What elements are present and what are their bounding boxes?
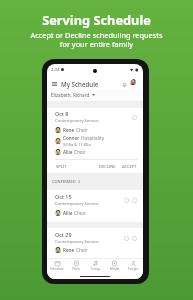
button[interactable]: Rene xyxy=(55,124,138,135)
staticText: Choir xyxy=(74,210,86,216)
button[interactable]: Profile xyxy=(130,79,140,89)
staticText: Connor xyxy=(63,135,80,141)
staticText: 2:34 xyxy=(51,67,60,73)
button[interactable]: Allie xyxy=(55,146,138,157)
staticText: DECLINE xyxy=(99,164,116,169)
button[interactable]: Info xyxy=(122,196,130,204)
button[interactable]: Menu xyxy=(50,79,59,88)
button[interactable]: Schedule xyxy=(47,259,67,273)
staticText: Hospitality xyxy=(81,135,105,141)
staticText: Allie xyxy=(63,149,73,155)
staticText: SPLIT xyxy=(56,164,67,169)
button[interactable]: Options xyxy=(130,196,138,204)
staticText: Choir xyxy=(76,127,88,133)
staticText: Contemporary Service xyxy=(55,118,99,124)
staticText: Serving Schedule xyxy=(42,11,151,28)
staticText: Choir xyxy=(76,247,88,253)
button[interactable]: Options xyxy=(130,234,138,242)
button[interactable]: People xyxy=(124,259,143,273)
staticText: Rene xyxy=(63,247,75,253)
staticText: Allie xyxy=(63,210,73,216)
staticText: Rene xyxy=(63,127,75,133)
staticText: Songs xyxy=(91,267,101,271)
staticText: 9:00a & 11:00a xyxy=(63,142,91,146)
staticText: My Schedule xyxy=(61,80,99,88)
staticText: Oct 8 xyxy=(55,110,69,117)
button[interactable]: Allie xyxy=(55,207,138,218)
button[interactable]: DECLINE xyxy=(98,162,117,171)
button[interactable]: SPLIT xyxy=(55,162,68,171)
staticText: Elizabeth, Richard xyxy=(51,92,90,98)
button[interactable]: Notifications xyxy=(119,79,129,89)
staticText: Oct 15 xyxy=(55,193,72,200)
staticText: 3 xyxy=(78,179,81,184)
staticText: Accept or Decline scheduling requests fo… xyxy=(30,30,163,50)
button[interactable]: Media xyxy=(105,259,124,273)
staticText: CONFIRMED xyxy=(52,179,76,184)
staticText: Media xyxy=(110,267,120,271)
staticText: People xyxy=(128,267,139,271)
button[interactable]: ACCEPT xyxy=(121,162,138,171)
button[interactable]: Songs xyxy=(86,259,105,273)
staticText: Contemporary Service xyxy=(55,201,99,207)
staticText: Oct 29 xyxy=(55,231,72,238)
button[interactable]: Info xyxy=(122,234,130,242)
button[interactable]: Plans xyxy=(67,259,86,273)
staticText: Schedule xyxy=(50,267,64,271)
button[interactable]: Rene xyxy=(55,245,138,254)
button[interactable]: Connor xyxy=(55,135,138,146)
staticText: ACCEPT xyxy=(122,164,137,169)
staticText: Choir xyxy=(74,149,86,155)
staticText: Contemporary Service xyxy=(55,239,99,245)
staticText: Plans xyxy=(72,267,81,271)
button[interactable]: More info xyxy=(130,113,138,121)
